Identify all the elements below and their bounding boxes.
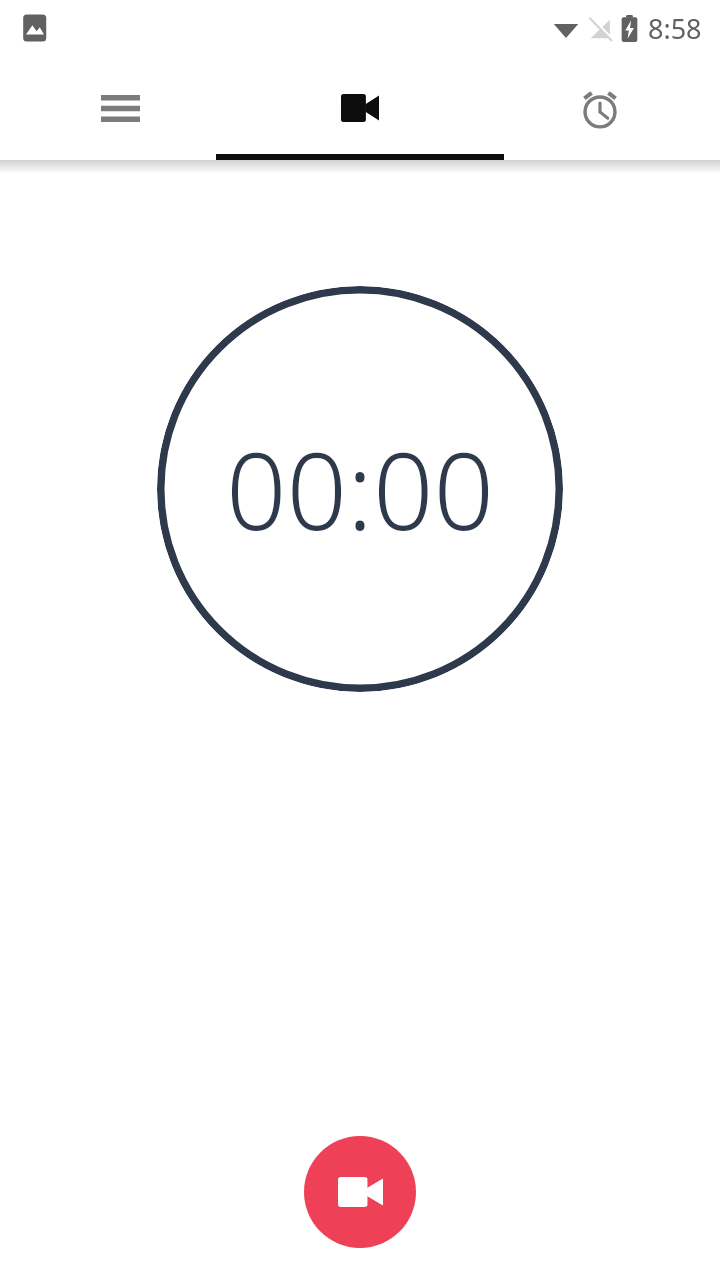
button[interactable]: Video recorder [240,56,480,160]
button[interactable]: Recording timer 00:00 [157,286,563,692]
other: Photo notification [20,12,52,44]
staticText: 00:00 [226,417,494,561]
button[interactable]: Recordings list [0,56,240,160]
button[interactable]: Scheduled recordings [480,56,720,160]
button[interactable]: Start recording [304,1136,416,1248]
staticText: 8:58 [648,10,702,47]
